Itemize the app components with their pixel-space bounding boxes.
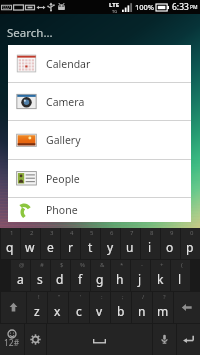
staticText: g — [96, 271, 104, 287]
staticText: s — [37, 271, 43, 287]
staticText: q — [6, 239, 14, 255]
staticText: ; — [122, 293, 124, 301]
staticText: ' — [80, 293, 82, 301]
staticText: d — [56, 271, 64, 287]
button[interactable]: 7 — [120, 228, 140, 259]
staticText: LTE — [109, 1, 120, 9]
staticText: 0 — [190, 229, 194, 237]
staticText: j — [138, 271, 142, 287]
staticText: @ — [19, 261, 25, 269]
staticText: o — [166, 239, 174, 255]
button[interactable]: Symbols — [0, 324, 24, 355]
button[interactable]: " — [47, 292, 68, 323]
button[interactable]: ( — [170, 260, 190, 291]
button[interactable]: 0 — [180, 228, 200, 259]
button[interactable]: Search... — [0, 14, 200, 45]
button[interactable]: + — [150, 260, 170, 291]
button[interactable]: Camera — [8, 83, 191, 120]
staticText: 12# — [4, 337, 20, 349]
button[interactable]: & — [90, 260, 110, 291]
button[interactable]: 1 — [0, 228, 20, 259]
staticText: w — [25, 239, 35, 255]
button[interactable]: 5 — [80, 228, 100, 259]
button[interactable]: Gallery — [8, 121, 191, 159]
staticText: People — [46, 172, 80, 186]
staticText: Camera — [46, 95, 85, 109]
button[interactable]: $ — [50, 260, 70, 291]
button[interactable]: Backspace — [173, 292, 200, 323]
staticText: 8 — [150, 229, 154, 237]
staticText: i — [148, 239, 152, 255]
staticText: " — [58, 293, 61, 301]
staticText: * — [120, 261, 124, 269]
button[interactable]: ; — [110, 292, 131, 323]
button[interactable]: Space — [46, 324, 152, 355]
staticText: u — [126, 239, 134, 255]
staticText: h — [116, 271, 124, 287]
staticText: ( — [181, 261, 183, 269]
staticText: p — [186, 239, 194, 255]
staticText: 3 — [50, 229, 54, 237]
button[interactable]: ' — [68, 292, 89, 323]
button[interactable]: 2 — [20, 228, 40, 259]
button[interactable]: - — [130, 260, 150, 291]
staticText: y — [107, 239, 114, 255]
button[interactable]: 4 — [60, 228, 80, 259]
staticText: 6:33 — [172, 1, 189, 13]
staticText: z — [34, 303, 40, 319]
staticText: TG — [112, 9, 118, 14]
button[interactable]: @ — [10, 260, 30, 291]
button[interactable]: 3 — [40, 228, 60, 259]
staticText: $ — [60, 261, 64, 269]
button[interactable]: ? — [152, 292, 173, 323]
button[interactable]: / — [131, 292, 152, 323]
staticText: 5 — [90, 229, 94, 237]
staticText: + — [160, 261, 164, 269]
staticText: e — [47, 239, 54, 255]
button[interactable]: # — [30, 260, 50, 291]
staticText: Gallery — [46, 133, 81, 147]
staticText: Phone — [46, 203, 78, 217]
button[interactable]: ! — [26, 292, 47, 323]
staticText: ! — [38, 293, 40, 301]
staticText: c — [76, 303, 82, 319]
staticText: 7 — [130, 229, 134, 237]
staticText: Search... — [7, 25, 53, 41]
button[interactable]: 9 — [160, 228, 180, 259]
staticText: n — [138, 303, 146, 319]
staticText: a — [17, 271, 24, 287]
staticText: 1 — [10, 229, 14, 237]
staticText: b — [117, 303, 125, 319]
staticText: / — [142, 293, 145, 301]
staticText: 2 — [30, 229, 34, 237]
button[interactable]: Phone — [8, 198, 191, 222]
staticText: t — [88, 239, 93, 255]
button[interactable]: : — [89, 292, 110, 323]
button[interactable]: Calendar — [8, 45, 191, 82]
staticText: 100% — [135, 2, 155, 12]
button[interactable]: 6 — [100, 228, 120, 259]
staticText: v — [96, 303, 103, 319]
staticText: 4 — [70, 229, 74, 237]
button[interactable]: Shift — [0, 292, 26, 323]
staticText: m — [157, 303, 169, 319]
button[interactable]: Voice input — [152, 324, 176, 355]
staticText: x — [54, 303, 61, 319]
button[interactable]: * — [110, 260, 130, 291]
staticText: f — [78, 271, 83, 287]
button[interactable]: % — [70, 260, 90, 291]
button[interactable]: Enter — [176, 324, 200, 355]
staticText: : — [101, 293, 103, 301]
staticText: - — [141, 261, 143, 269]
staticText: # — [40, 261, 44, 269]
staticText: PM — [190, 4, 198, 11]
button[interactable]: Settings — [24, 324, 46, 355]
staticText: 9 — [170, 229, 174, 237]
button[interactable]: People — [8, 160, 191, 197]
staticText: % — [80, 261, 85, 269]
staticText: l — [178, 271, 182, 287]
button[interactable]: 8 — [140, 228, 160, 259]
staticText: Calendar — [46, 57, 91, 71]
staticText: k — [157, 271, 164, 287]
staticText: 6 — [110, 229, 114, 237]
